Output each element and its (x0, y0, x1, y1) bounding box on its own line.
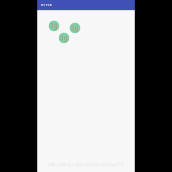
button[interactable]: Node 2 (70, 23, 80, 33)
staticText: 3g (60, 34, 68, 42)
staticText: http://blog.csdn.net/yangrong913 (47, 162, 123, 167)
button[interactable]: My Test (41, 3, 52, 7)
button[interactable]: Node 3 (59, 33, 69, 43)
staticText: My Test (41, 3, 52, 7)
button[interactable]: Node 1 (49, 21, 59, 31)
staticText: 3g (50, 22, 58, 30)
staticText: 3g (71, 24, 79, 32)
